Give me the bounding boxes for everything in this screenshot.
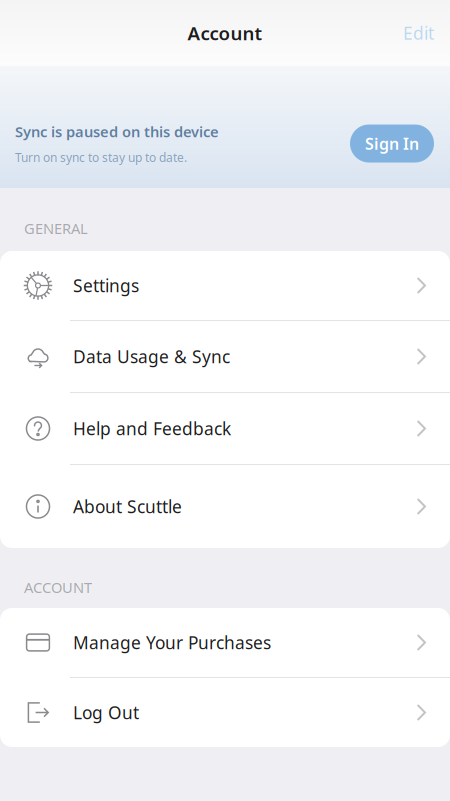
button[interactable]: Edit [403,11,450,55]
button[interactable]: Log Out [0,678,450,747]
button[interactable]: Data Usage & Sync [0,321,450,393]
button[interactable]: Sign In [350,124,434,162]
staticText: GENERAL [24,218,88,238]
staticText: Log Out [73,701,139,724]
button[interactable]: About Scuttle [0,465,450,548]
button[interactable]: Help and Feedback [0,393,450,465]
staticText: Account [187,21,262,45]
button[interactable]: Settings [0,251,450,321]
staticText: ACCOUNT [24,577,92,597]
staticText: Turn on sync to stay up to date. [15,149,187,165]
staticText: Data Usage & Sync [73,345,230,368]
staticText: Help and Feedback [73,417,231,440]
staticText: About Scuttle [73,495,182,518]
staticText: Edit [403,21,434,44]
staticText: Sign In [365,133,419,154]
button[interactable]: Manage Your Purchases [0,608,450,678]
staticText: Settings [73,274,139,297]
staticText: Manage Your Purchases [73,631,271,654]
staticText: Sync is paused on this device [15,122,219,141]
